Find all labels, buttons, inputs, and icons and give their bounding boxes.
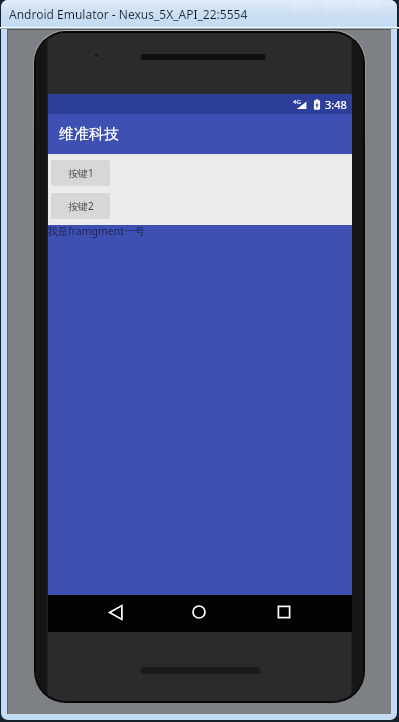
staticText: 按键2 — [68, 199, 94, 213]
button[interactable]: 按键1 — [51, 160, 110, 186]
button[interactable]: Recents — [277, 605, 291, 619]
button[interactable]: Home — [192, 605, 206, 619]
button[interactable]: 按键2 — [51, 193, 110, 219]
button[interactable]: Back — [109, 605, 123, 620]
staticText: 我是framgment一号 — [47, 224, 145, 238]
staticText: 3:48 — [325, 97, 347, 112]
staticText: 按键1 — [68, 166, 94, 180]
staticText: 维准科技 — [59, 125, 119, 144]
staticText: 4G — [293, 98, 301, 106]
staticText: Android Emulator - Nexus_5X_API_22:5554 — [9, 6, 248, 22]
